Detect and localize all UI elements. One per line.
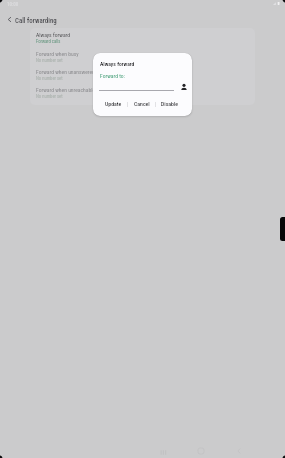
- staticText: No number set: [36, 58, 63, 63]
- staticText: Update: [105, 101, 122, 108]
- button[interactable]: Forward when unanswered: [30, 67, 255, 85]
- button[interactable]: Forward when unreachable: [30, 85, 255, 103]
- staticText: Always forward: [100, 61, 135, 68]
- staticText: Forward calls: [36, 39, 61, 44]
- staticText: Always forward: [36, 32, 71, 39]
- staticText: Forward when unreachable: [36, 87, 96, 94]
- staticText: No number set: [36, 94, 63, 99]
- staticText: Cancel: [134, 101, 150, 108]
- staticText: Call forwarding: [15, 17, 57, 25]
- staticText: Forward when busy: [36, 51, 79, 58]
- button[interactable]: Update: [100, 97, 127, 111]
- button[interactable]: Cancel: [128, 97, 155, 111]
- staticText: 10:00: [7, 1, 19, 7]
- button[interactable]: Forward when busy: [30, 49, 255, 67]
- button[interactable]: Navigate up: [2, 12, 16, 26]
- staticText: Disable: [161, 101, 179, 108]
- staticText: No number set: [36, 76, 63, 81]
- button[interactable]: Edge panel: [280, 217, 285, 241]
- button[interactable]: Disable: [156, 97, 183, 111]
- button[interactable]: Always forward: [30, 30, 255, 48]
- staticText: Forward to:: [100, 73, 125, 80]
- staticText: Forward when unanswered: [36, 69, 95, 76]
- button[interactable]: Select contact: [178, 81, 189, 92]
